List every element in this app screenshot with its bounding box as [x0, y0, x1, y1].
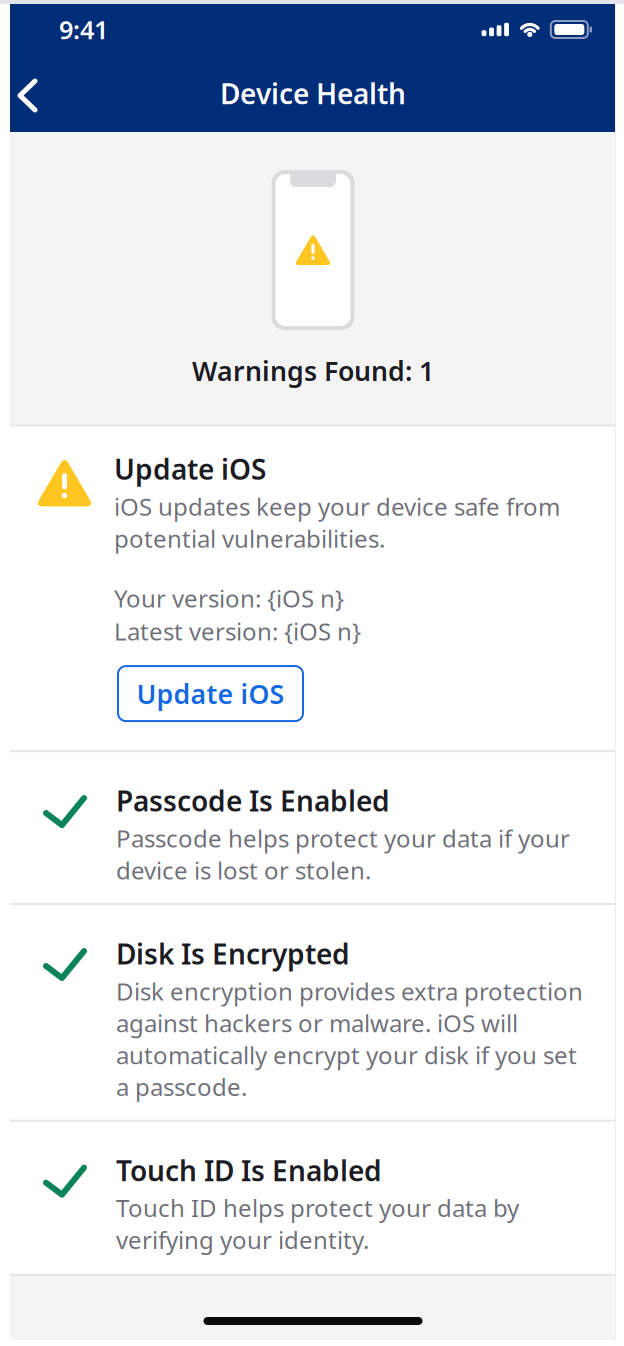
- staticText: iOS updates keep your device safe from p…: [114, 491, 560, 554]
- staticText: Update iOS: [114, 450, 266, 488]
- button[interactable]: Update iOS: [118, 666, 303, 721]
- button[interactable]: Back: [10, 68, 57, 119]
- staticText: Touch ID Is Enabled: [116, 1152, 382, 1189]
- staticText: Disk Is Encrypted: [116, 935, 350, 972]
- staticText: Disk encryption provides extra protectio…: [116, 975, 583, 1103]
- staticText: Latest version: {iOS n}: [114, 615, 361, 647]
- staticText: Update iOS: [136, 676, 284, 711]
- staticText: Device Health: [220, 75, 406, 112]
- staticText: Passcode Is Enabled: [116, 782, 390, 819]
- staticText: Passcode helps protect your data if your…: [116, 822, 570, 886]
- staticText: Your version: {iOS n}: [114, 582, 344, 614]
- staticText: Touch ID helps protect your data by veri…: [116, 1192, 519, 1256]
- staticText: Warnings Found: 1: [192, 353, 434, 388]
- staticText: 9:41: [59, 13, 108, 46]
